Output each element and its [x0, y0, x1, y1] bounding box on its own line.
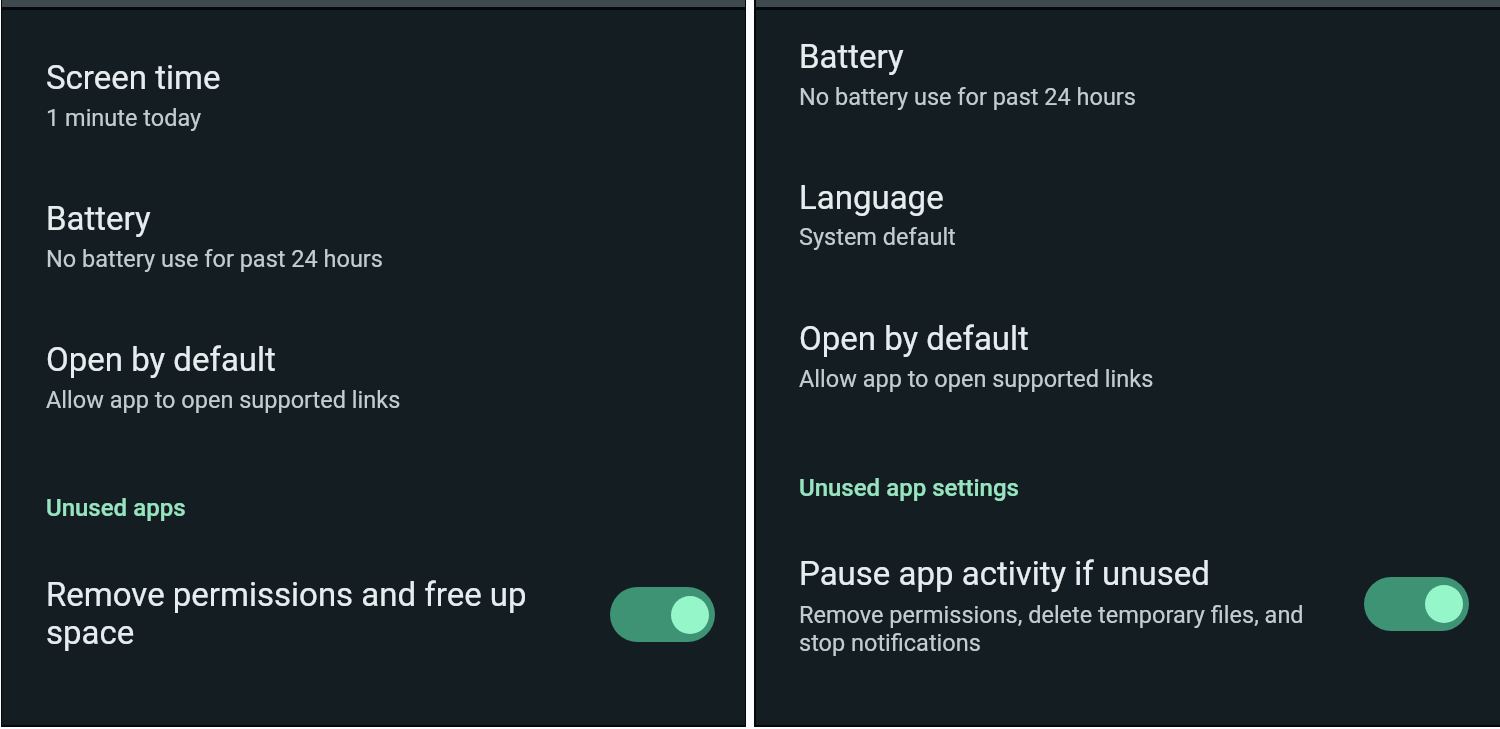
button[interactable]: Screen time — [1, 36, 745, 156]
button[interactable]: Open by default — [1, 318, 745, 438]
button[interactable]: Pause app activity if unused — [754, 532, 1498, 672]
button[interactable]: Battery — [1, 177, 745, 297]
staticText: Remove permissions and free up space — [46, 575, 556, 652]
staticText: System default — [799, 223, 956, 251]
button[interactable]: Language — [754, 156, 1498, 276]
staticText: Allow app to open supported links — [799, 365, 1154, 393]
staticText: No battery use for past 24 hours — [799, 83, 1136, 111]
button[interactable]: Remove permissions and free up space — [610, 587, 715, 642]
staticText: Remove permissions, delete temporary fil… — [799, 601, 1314, 657]
staticText: Open by default — [799, 319, 1029, 358]
staticText: Battery — [799, 37, 904, 76]
staticText: Language — [799, 178, 944, 217]
staticText: Screen time — [46, 58, 221, 97]
staticText: Battery — [46, 199, 151, 238]
button[interactable]: Open by default — [754, 297, 1498, 417]
staticText: No battery use for past 24 hours — [46, 245, 383, 273]
button[interactable]: Remove permissions and free up space — [1, 553, 745, 673]
button[interactable]: Unused apps — [1, 480, 745, 536]
staticText: Allow app to open supported links — [46, 386, 401, 414]
button[interactable]: Battery — [754, 15, 1498, 135]
button[interactable]: Pause app activity if unused — [1364, 577, 1469, 631]
button[interactable]: Unused app settings — [754, 460, 1498, 516]
staticText: 1 minute today — [46, 104, 202, 132]
staticText: Pause app activity if unused — [799, 554, 1210, 593]
staticText: Unused apps — [46, 494, 186, 522]
staticText: Unused app settings — [799, 474, 1019, 502]
staticText: Open by default — [46, 340, 276, 379]
